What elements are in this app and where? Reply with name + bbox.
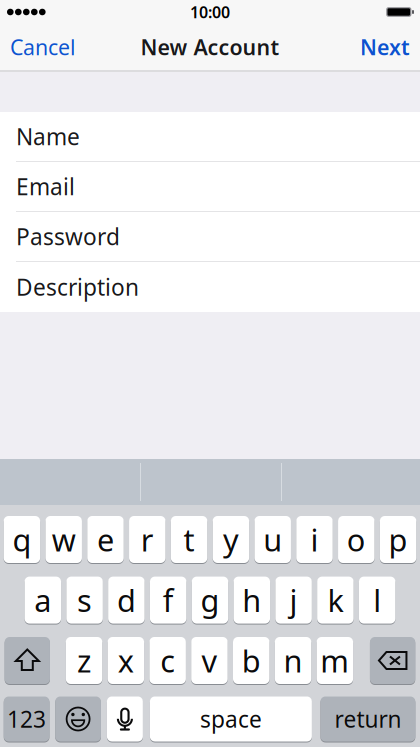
staticText: w: [52, 519, 76, 560]
button[interactable]: s: [66, 576, 103, 625]
staticText: p: [389, 519, 408, 560]
staticText: f: [163, 580, 174, 620]
button[interactable]: w: [45, 515, 82, 564]
button[interactable]: Description: [0, 262, 420, 312]
staticText: y: [223, 519, 239, 560]
button[interactable]: a: [24, 576, 61, 625]
staticText: o: [347, 519, 366, 560]
button[interactable]: x: [108, 636, 144, 685]
staticText: return: [334, 704, 401, 734]
button[interactable]: t: [171, 515, 207, 564]
button[interactable]: y: [213, 515, 249, 564]
staticText: v: [201, 640, 217, 681]
button[interactable]: Next: [350, 24, 420, 70]
button[interactable]: v: [191, 636, 228, 685]
staticText: q: [12, 519, 31, 560]
button[interactable]: Cancel: [0, 24, 86, 70]
button[interactable]: h: [234, 576, 270, 625]
staticText: Cancel: [10, 33, 76, 61]
staticText: Name: [16, 121, 80, 151]
staticText: u: [263, 519, 282, 560]
staticText: 10:00: [190, 1, 230, 23]
button[interactable]: Password: [0, 212, 420, 262]
staticText: g: [200, 580, 219, 620]
staticText: s: [77, 580, 92, 620]
button[interactable]: q: [4, 515, 40, 564]
staticText: New Account: [140, 33, 279, 61]
staticText: 123: [7, 704, 46, 734]
button[interactable]: Emoji: [55, 695, 101, 742]
button[interactable]: g: [192, 576, 228, 625]
staticText: e: [97, 519, 114, 560]
button[interactable]: space: [150, 695, 312, 742]
button[interactable]: b: [233, 636, 269, 685]
button[interactable]: m: [317, 636, 353, 685]
button[interactable]: i: [296, 515, 333, 564]
button[interactable]: p: [380, 515, 416, 564]
staticText: c: [160, 640, 175, 681]
staticText: z: [77, 640, 91, 681]
staticText: j: [290, 580, 298, 620]
button[interactable]: c: [149, 636, 186, 685]
button[interactable]: n: [275, 636, 311, 685]
button[interactable]: 123: [4, 695, 49, 742]
staticText: b: [242, 640, 261, 681]
staticText: Description: [16, 272, 139, 302]
button[interactable]: Name: [0, 112, 420, 162]
button[interactable]: j: [275, 576, 312, 625]
button[interactable]: f: [150, 576, 186, 625]
staticText: n: [284, 640, 303, 681]
staticText: Email: [16, 171, 75, 201]
button[interactable]: o: [338, 515, 374, 564]
button[interactable]: u: [254, 515, 291, 564]
button[interactable]: z: [66, 636, 102, 685]
button[interactable]: Shift: [5, 636, 50, 685]
staticText: Password: [16, 221, 120, 251]
button[interactable]: r: [129, 515, 165, 564]
staticText: a: [34, 580, 51, 620]
button[interactable]: e: [87, 515, 124, 564]
staticText: h: [242, 580, 261, 620]
button[interactable]: Dictation: [107, 695, 143, 742]
button[interactable]: d: [108, 576, 145, 625]
button[interactable]: Delete: [370, 636, 415, 685]
staticText: l: [373, 580, 381, 620]
staticText: Next: [360, 33, 410, 61]
staticText: k: [327, 580, 343, 620]
button[interactable]: l: [359, 576, 395, 625]
staticText: space: [200, 704, 262, 734]
staticText: r: [141, 519, 154, 560]
button[interactable]: Email: [0, 162, 420, 212]
staticText: t: [184, 519, 195, 560]
button[interactable]: k: [317, 576, 354, 625]
staticText: i: [310, 519, 318, 560]
staticText: d: [117, 580, 136, 620]
staticText: m: [320, 640, 349, 681]
button[interactable]: return: [320, 695, 415, 742]
staticText: x: [118, 640, 134, 681]
